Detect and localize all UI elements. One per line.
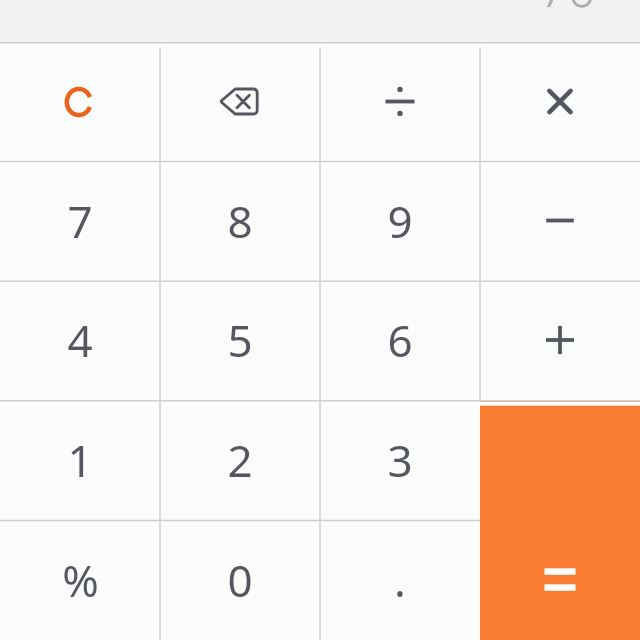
button[interactable]: Minus <box>480 161 640 280</box>
staticText: . <box>394 550 406 610</box>
button[interactable]: 1 <box>0 400 160 520</box>
staticText: 3 <box>387 430 413 490</box>
staticText: % <box>62 550 99 610</box>
staticText: 2 <box>227 430 253 490</box>
button[interactable]: 4 <box>0 280 160 400</box>
staticText: 6 <box>387 310 413 370</box>
staticText: 7 <box>67 191 93 251</box>
button[interactable]: 0 <box>160 520 320 640</box>
staticText: 9 <box>387 191 413 251</box>
staticText: 1 <box>67 430 93 490</box>
button[interactable]: 2 <box>160 400 320 520</box>
button[interactable]: 8 <box>160 161 320 280</box>
staticText: 0 <box>227 550 253 610</box>
button[interactable]: . <box>320 520 480 640</box>
button[interactable]: Divide <box>320 42 480 161</box>
button[interactable]: Equals <box>480 401 640 640</box>
button[interactable]: Multiply <box>480 42 640 161</box>
button[interactable]: Clear <box>0 42 160 161</box>
button[interactable]: Backspace <box>160 42 320 161</box>
staticText: 8 <box>227 191 253 251</box>
button[interactable]: Plus <box>480 280 640 400</box>
button[interactable]: 9 <box>320 161 480 280</box>
button[interactable]: 7 <box>0 161 160 280</box>
button[interactable]: 6 <box>320 280 480 400</box>
staticText: 5 <box>227 310 253 370</box>
staticText: 70 <box>539 0 597 22</box>
staticText: 4 <box>67 310 93 370</box>
button[interactable]: 5 <box>160 280 320 400</box>
button[interactable]: 3 <box>320 400 480 520</box>
button[interactable]: % <box>0 520 160 640</box>
